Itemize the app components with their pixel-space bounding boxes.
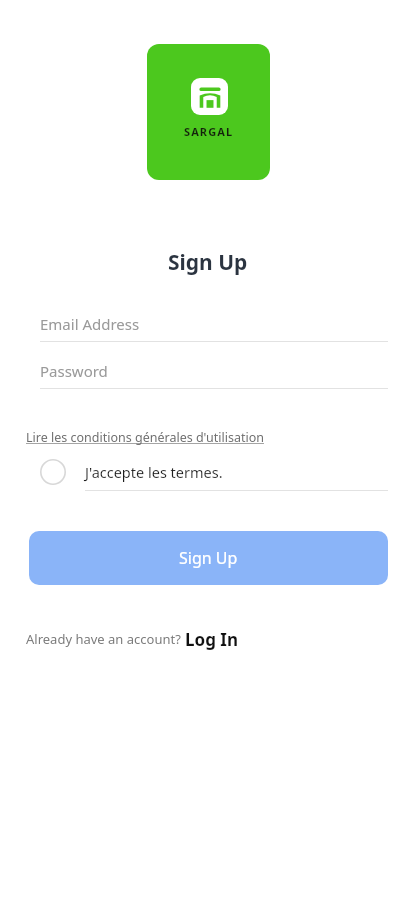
button[interactable]: Sign Up — [29, 531, 388, 585]
button[interactable]: Sargal logo — [147, 44, 270, 180]
button[interactable]: Log In — [185, 628, 238, 651]
staticText: Sign Up — [168, 248, 248, 277]
staticText: J'accepte les termes. — [85, 462, 223, 482]
staticText: Lire les conditions générales d'utilisat… — [26, 429, 264, 446]
staticText: Email Address — [40, 314, 140, 334]
staticText: Already have an account? — [26, 630, 185, 648]
staticText: Password — [40, 361, 108, 381]
button[interactable]: Email Address — [40, 306, 388, 342]
staticText: Sign Up — [179, 547, 238, 569]
button[interactable]: Lire les conditions générales d'utilisat… — [26, 427, 264, 448]
staticText: Log In — [185, 628, 238, 651]
button[interactable]: J'accepte les termes. — [40, 455, 388, 489]
staticText: SARGAL — [184, 124, 234, 139]
button[interactable]: Password — [40, 353, 388, 389]
